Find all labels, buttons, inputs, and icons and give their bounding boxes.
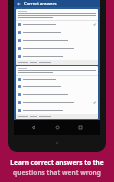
button[interactable] [16, 21, 98, 28]
button[interactable] [16, 9, 98, 65]
button[interactable]: Recent apps [76, 123, 85, 132]
button[interactable] [16, 36, 98, 44]
staticText: Learn correct answers to the [10, 158, 104, 167]
button[interactable]: Back [16, 1, 22, 7]
button[interactable] [16, 98, 98, 106]
button[interactable] [16, 28, 98, 36]
button[interactable] [16, 76, 98, 83]
button[interactable] [16, 66, 98, 119]
button[interactable] [16, 52, 98, 60]
button[interactable] [16, 83, 98, 90]
button[interactable] [16, 90, 98, 98]
button[interactable]: Back [29, 123, 38, 132]
button[interactable] [16, 106, 98, 114]
button[interactable] [16, 44, 98, 52]
staticText: Correct answers [24, 1, 57, 7]
staticText: questions that went wrong [13, 168, 101, 177]
button[interactable]: Home [53, 123, 62, 132]
